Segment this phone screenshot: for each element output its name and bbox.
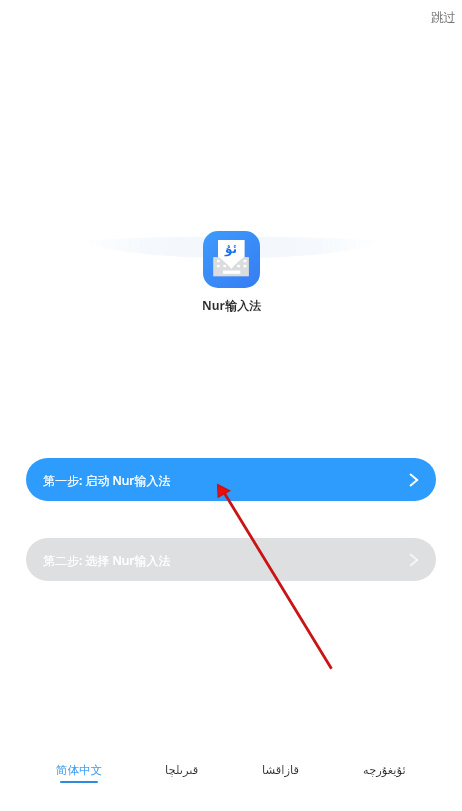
button[interactable]: قازاقشا (258, 761, 304, 778)
staticText: قازاقشا (262, 763, 300, 776)
button[interactable]: ئۇيغۇرچە (359, 761, 410, 778)
staticText: 第一步: 启动 Nur输入法 (43, 472, 171, 488)
staticText: 跳过 (431, 10, 456, 26)
button[interactable]: قىرىلچا (161, 761, 203, 778)
button[interactable]: 第一步: 启动 Nur输入法 (26, 458, 436, 501)
staticText: ئۇ (225, 242, 238, 256)
button[interactable]: 跳过 (425, 4, 462, 32)
button[interactable]: 第二步: 选择 Nur输入法 (26, 538, 436, 581)
staticText: ئۇيغۇرچە (363, 763, 406, 776)
staticText: 第二步: 选择 Nur输入法 (43, 552, 171, 568)
button[interactable]: 简体中文 (52, 761, 106, 785)
other: Nur input method app icon (203, 231, 260, 288)
staticText: قىرىلچا (165, 763, 199, 776)
staticText: Nur输入法 (202, 297, 261, 313)
staticText: 简体中文 (56, 763, 102, 777)
